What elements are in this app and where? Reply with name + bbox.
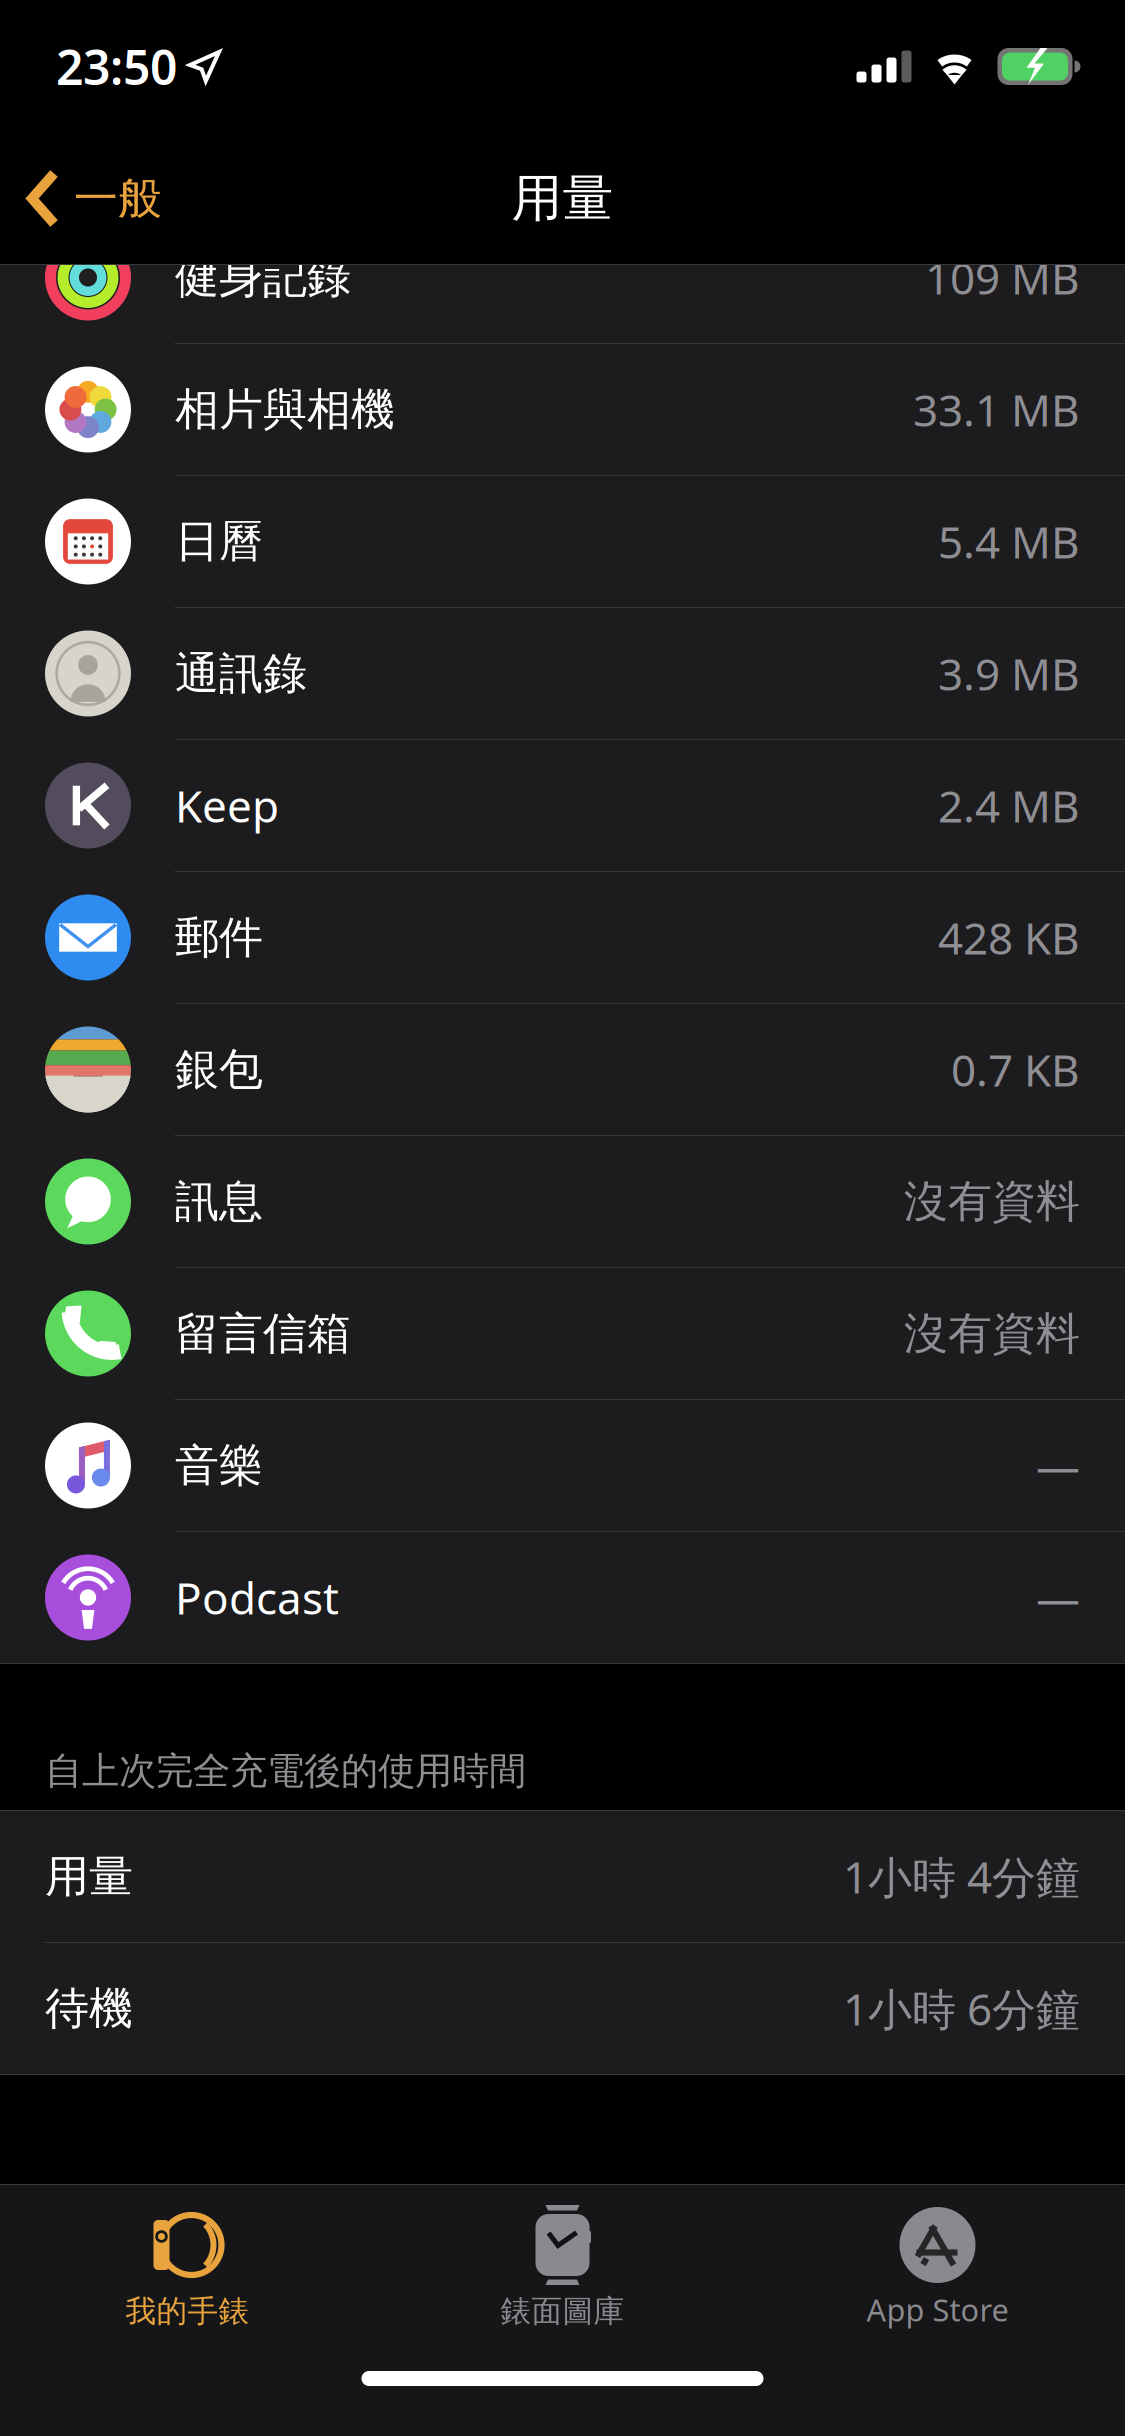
staticText: 郵件 <box>175 910 263 964</box>
button[interactable]: 郵件 <box>0 872 1125 1003</box>
staticText: Podcast <box>175 1568 339 1627</box>
staticText: 1小時 6分鐘 <box>843 1979 1080 2038</box>
button[interactable]: Face Gallery <box>375 2185 750 2345</box>
staticText: 2.4 MB <box>938 776 1080 835</box>
staticText: 沒有資料 <box>904 1306 1080 1360</box>
staticText: 1小時 4分鐘 <box>843 1847 1080 1906</box>
button[interactable]: 用量 <box>0 1811 1125 1942</box>
button[interactable]: Keep <box>0 740 1125 871</box>
staticText: 通訊錄 <box>175 646 307 700</box>
staticText: 我的手錶 <box>125 2292 249 2330</box>
staticText: 用量 <box>45 1849 133 1903</box>
staticText: 5.4 MB <box>938 512 1080 571</box>
staticText: 相片與相機 <box>175 382 395 436</box>
button[interactable]: 通訊錄 <box>0 608 1125 739</box>
button[interactable]: 訊息 <box>0 1136 1125 1267</box>
staticText: 留言信箱 <box>175 1306 351 1360</box>
staticText: 109 MB <box>925 248 1080 307</box>
button[interactable]: 音樂 <box>0 1400 1125 1531</box>
staticText: 音樂 <box>175 1438 263 1492</box>
button[interactable]: 相片與相機 <box>0 344 1125 475</box>
staticText: — <box>1036 1568 1080 1627</box>
staticText: 用量 <box>511 167 613 230</box>
staticText: 錶面圖庫 <box>500 2292 624 2330</box>
button[interactable]: App Store <box>750 2185 1125 2345</box>
staticText: 428 KB <box>938 908 1080 967</box>
button[interactable]: 健身記錄 <box>0 212 1125 343</box>
staticText: 訊息 <box>175 1174 263 1228</box>
staticText: 33.1 MB <box>913 380 1080 439</box>
staticText: 23:50 <box>56 35 177 98</box>
staticText: — <box>1036 1436 1080 1495</box>
staticText: 自上次完全充電後的使用時間 <box>45 1748 526 1794</box>
button[interactable]: My Watch <box>0 2185 375 2345</box>
staticText: 健身記錄 <box>175 250 351 304</box>
button[interactable]: 一般 <box>0 133 180 264</box>
staticText: 0.7 KB <box>951 1040 1080 1099</box>
staticText: 沒有資料 <box>904 1174 1080 1228</box>
button[interactable]: 待機 <box>0 1943 1125 2074</box>
staticText: 3.9 MB <box>938 644 1080 703</box>
staticText: 一般 <box>74 171 162 225</box>
staticText: 日曆 <box>175 514 263 568</box>
staticText: Keep <box>175 776 279 835</box>
button[interactable]: Podcast <box>0 1532 1125 1663</box>
staticText: 銀包 <box>175 1042 263 1096</box>
button[interactable]: 日曆 <box>0 476 1125 607</box>
button[interactable]: 留言信箱 <box>0 1268 1125 1399</box>
staticText: 待機 <box>45 1981 133 2035</box>
staticText: App Store <box>866 2289 1008 2330</box>
button[interactable]: 銀包 <box>0 1004 1125 1135</box>
